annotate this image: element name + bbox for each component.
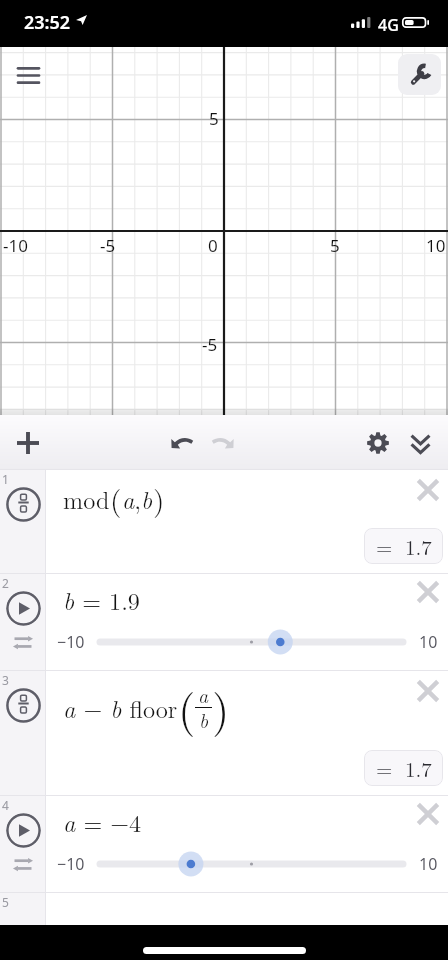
button[interactable]: Delete expression [406, 669, 448, 713]
button[interactable]: Redo [202, 421, 246, 465]
button[interactable]: −10 [0, 850, 448, 878]
staticText: a − b floor [63, 691, 178, 725]
staticText: 1.7 [405, 753, 432, 783]
button[interactable]: Expression type [0, 671, 45, 795]
staticText: -5 [202, 333, 218, 356]
button[interactable]: = [364, 528, 443, 564]
staticText: -5 [100, 234, 116, 257]
staticText: 5 [2, 894, 9, 910]
staticText: 10 [419, 631, 438, 653]
staticText: −10 [57, 853, 85, 875]
button[interactable]: Play animation [6, 813, 41, 848]
button[interactable]: Slider options [14, 635, 32, 648]
staticText: 10 [426, 234, 446, 257]
staticText: 5 [330, 234, 340, 257]
staticText: 2 [2, 575, 9, 591]
staticText: a [198, 681, 209, 709]
staticText: 1.7 [405, 531, 432, 561]
staticText: 4 [2, 797, 9, 813]
button[interactable]: Play animation [6, 591, 41, 626]
button[interactable]: Collapse keypad [398, 421, 442, 465]
staticText: 5 [209, 107, 219, 130]
staticText: ) [212, 676, 230, 739]
staticText: ( [178, 676, 196, 739]
staticText: 3 [2, 672, 9, 688]
staticText: mod [63, 482, 110, 516]
staticText: b = 1.9 [63, 583, 140, 617]
button[interactable]: = [364, 750, 443, 786]
staticText: 4G [378, 14, 399, 36]
button[interactable]: Add expression [6, 421, 50, 465]
button[interactable]: −10 [0, 628, 448, 656]
button[interactable]: Graph tools [398, 54, 441, 95]
staticText: = [376, 531, 393, 561]
button[interactable]: Delete expression [406, 792, 448, 836]
button[interactable]: Menu [8, 55, 48, 95]
staticText: 23:52 [24, 10, 71, 35]
button[interactable]: Settings [356, 421, 400, 465]
staticText: = [376, 753, 393, 783]
staticText: -10 [3, 234, 28, 257]
staticText: a = −4 [63, 805, 142, 839]
button[interactable]: Expression type [0, 470, 45, 573]
staticText: ( [110, 478, 122, 520]
staticText: 10 [419, 853, 438, 875]
staticText: 0 [208, 234, 218, 257]
staticText: ) [153, 478, 165, 520]
button[interactable]: Delete expression [406, 468, 448, 512]
button[interactable]: Slider options [14, 857, 32, 870]
staticText: a,b [122, 482, 153, 516]
staticText: 1 [2, 471, 9, 487]
button[interactable]: Undo [159, 421, 203, 465]
staticText: −10 [57, 631, 85, 653]
staticText: b [199, 706, 209, 734]
button[interactable]: Delete expression [406, 570, 448, 614]
